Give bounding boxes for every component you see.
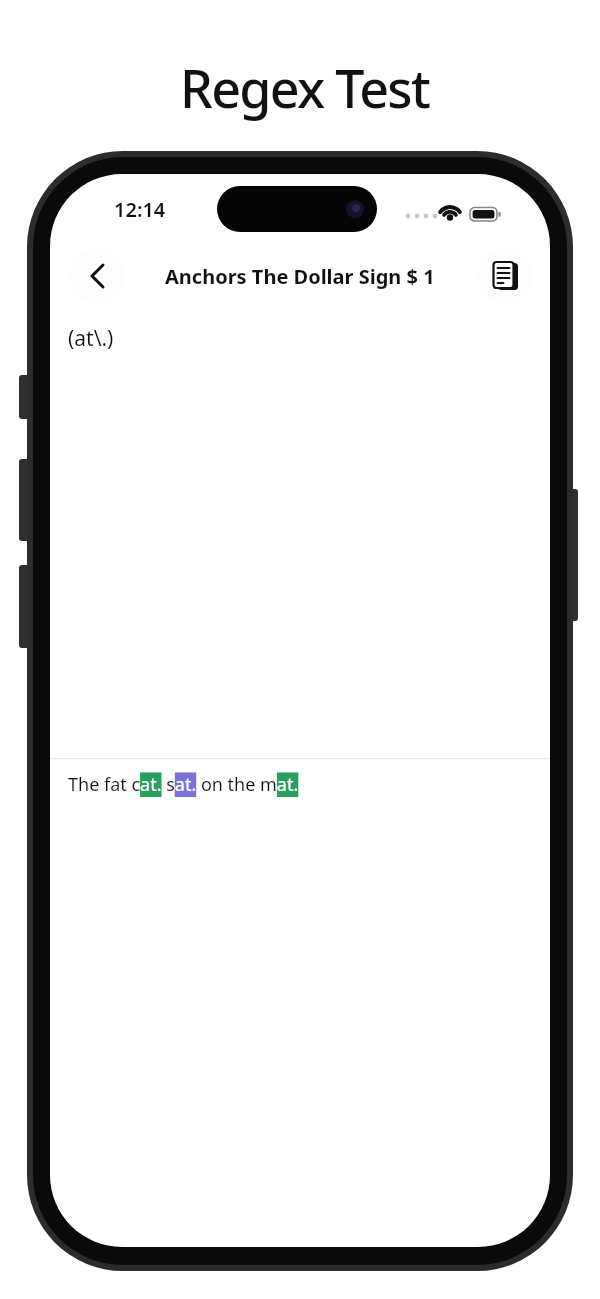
staticText: The fat cat. sat. on the mat. <box>68 772 299 797</box>
staticText: (at\.) <box>68 324 114 353</box>
staticText: Regex Test <box>180 52 430 123</box>
button[interactable] <box>69 248 125 304</box>
button[interactable] <box>477 248 533 304</box>
staticText: Anchors The Dollar Sign $ 1 <box>165 263 435 290</box>
staticText: 12:14 <box>114 196 166 223</box>
